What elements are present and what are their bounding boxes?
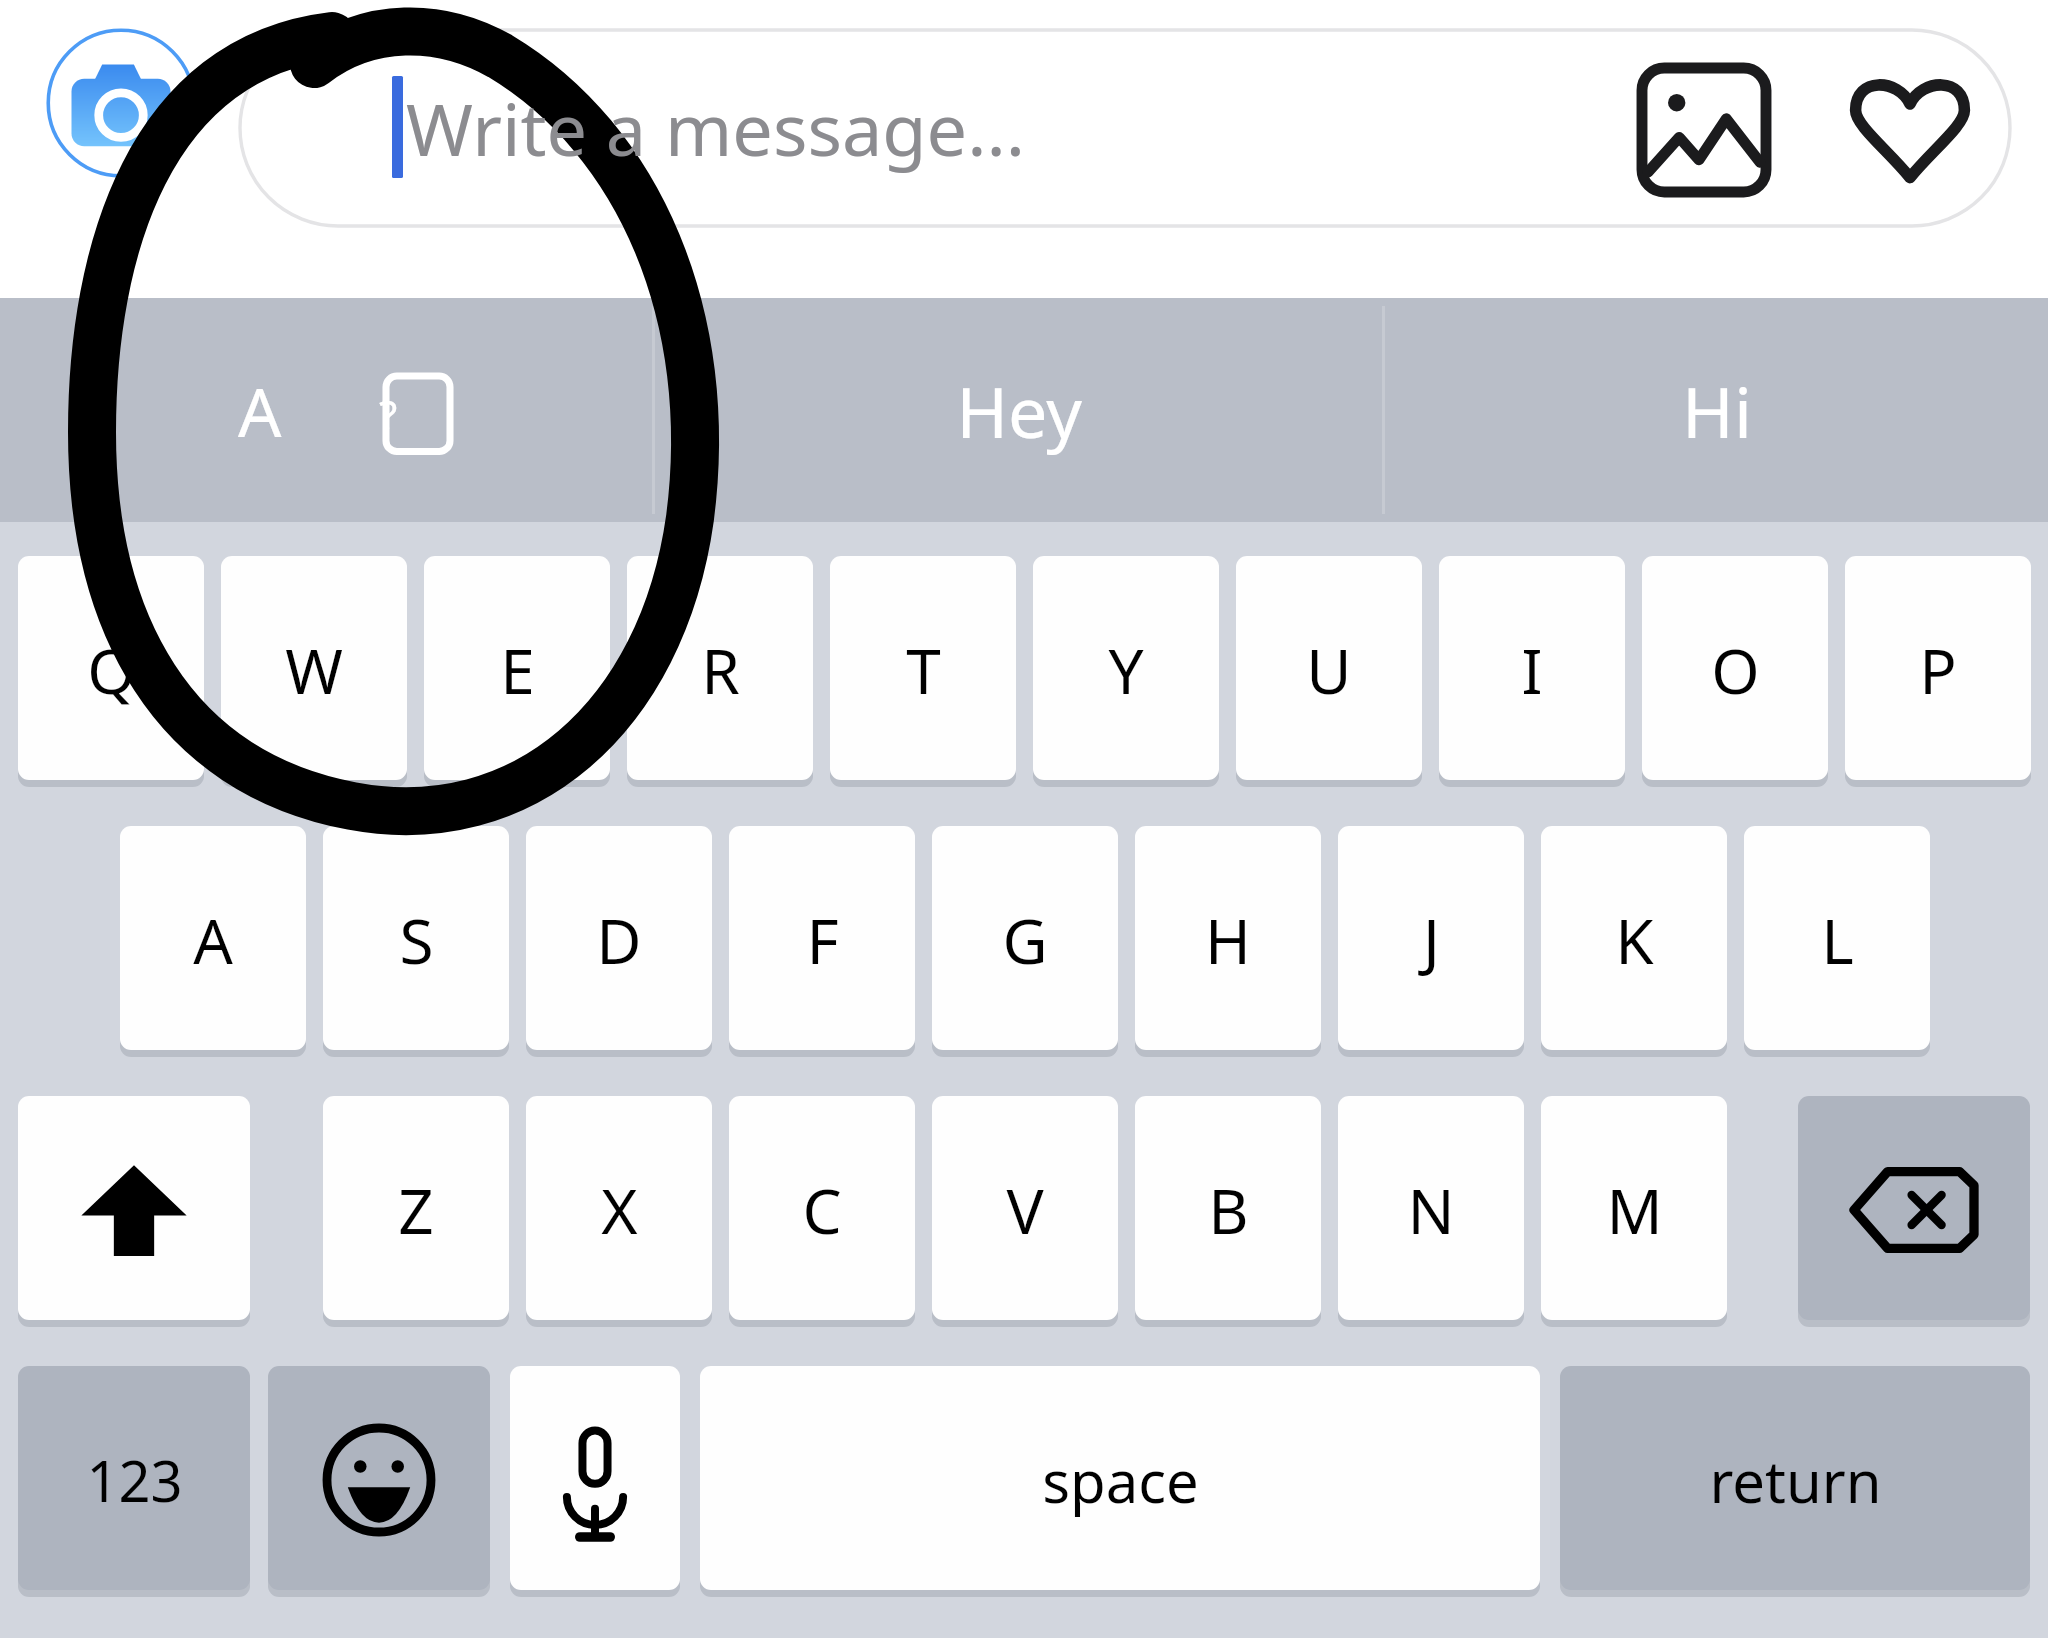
staticText: N	[1407, 1168, 1455, 1252]
button[interactable]: Z	[323, 1096, 509, 1324]
button[interactable]: K	[1541, 826, 1727, 1054]
staticText: T	[906, 628, 941, 712]
staticText: Hey	[956, 363, 1082, 458]
button[interactable]: Autocorrect suggestion	[0, 298, 652, 522]
button[interactable]: A	[120, 826, 306, 1054]
button[interactable]: C	[729, 1096, 915, 1324]
staticText: W	[285, 628, 343, 712]
staticText: D	[596, 898, 642, 982]
button[interactable]: Attach photo	[1634, 60, 1774, 196]
button[interactable]: O	[1642, 556, 1828, 784]
button[interactable]: Write a message...	[240, 30, 1620, 226]
staticText: X	[601, 1168, 638, 1252]
staticText: J	[1423, 898, 1440, 982]
button[interactable]: Hey	[655, 298, 1382, 522]
staticText: S	[399, 898, 434, 982]
staticText: space	[1042, 1441, 1199, 1520]
button[interactable]: Backspace	[1798, 1096, 2030, 1324]
button[interactable]: Camera	[46, 28, 196, 178]
staticText: M	[1606, 1168, 1663, 1252]
button[interactable]: X	[526, 1096, 712, 1324]
staticText: I	[1521, 628, 1543, 712]
staticText: P	[1919, 628, 1957, 712]
staticText: Z	[398, 1168, 434, 1252]
staticText: A	[193, 898, 233, 982]
button[interactable]: Hi	[1385, 298, 2048, 522]
button[interactable]: Voice input	[510, 1366, 680, 1594]
staticText: Hi	[1682, 363, 1752, 458]
button[interactable]: Emoji	[268, 1366, 490, 1594]
staticText: G	[1002, 898, 1048, 982]
staticText: V	[1006, 1168, 1044, 1252]
button[interactable]: J	[1338, 826, 1524, 1054]
staticText: U	[1306, 628, 1352, 712]
button[interactable]: W	[221, 556, 407, 784]
staticText: H	[1205, 898, 1251, 982]
button[interactable]: L	[1744, 826, 1930, 1054]
button[interactable]: Numbers	[18, 1366, 250, 1594]
staticText: F	[806, 898, 839, 982]
staticText: C	[802, 1168, 842, 1252]
staticText: B	[1208, 1168, 1249, 1252]
button[interactable]: G	[932, 826, 1118, 1054]
button[interactable]: S	[323, 826, 509, 1054]
button[interactable]: Y	[1033, 556, 1219, 784]
staticText: 123	[86, 1442, 183, 1518]
button[interactable]: U	[1236, 556, 1422, 784]
button[interactable]: E	[424, 556, 610, 784]
button[interactable]: I	[1439, 556, 1625, 784]
button[interactable]: N	[1338, 1096, 1524, 1324]
staticText: R	[701, 628, 740, 712]
button[interactable]: B	[1135, 1096, 1321, 1324]
button[interactable]: R	[627, 556, 813, 784]
staticText: Write a message...	[406, 79, 1026, 177]
staticText: E	[500, 628, 535, 712]
button[interactable]: return	[1560, 1366, 2030, 1594]
button[interactable]: Like	[1836, 56, 1980, 200]
staticText: A	[238, 364, 282, 457]
button[interactable]: D	[526, 826, 712, 1054]
button[interactable]: V	[932, 1096, 1118, 1324]
staticText: K	[1615, 898, 1654, 982]
button[interactable]: T	[830, 556, 1016, 784]
button[interactable]: space	[700, 1366, 1540, 1594]
staticText: Q	[87, 628, 136, 712]
staticText: ?	[379, 386, 398, 443]
staticText: Y	[1108, 628, 1144, 712]
button[interactable]: F	[729, 826, 915, 1054]
staticText: O	[1711, 628, 1760, 712]
staticText: return	[1709, 1441, 1882, 1520]
staticText: L	[1821, 898, 1854, 982]
button[interactable]: Q	[18, 556, 204, 784]
button[interactable]: M	[1541, 1096, 1727, 1324]
button[interactable]: Shift	[18, 1096, 250, 1324]
button[interactable]: H	[1135, 826, 1321, 1054]
button[interactable]: P	[1845, 556, 2031, 784]
